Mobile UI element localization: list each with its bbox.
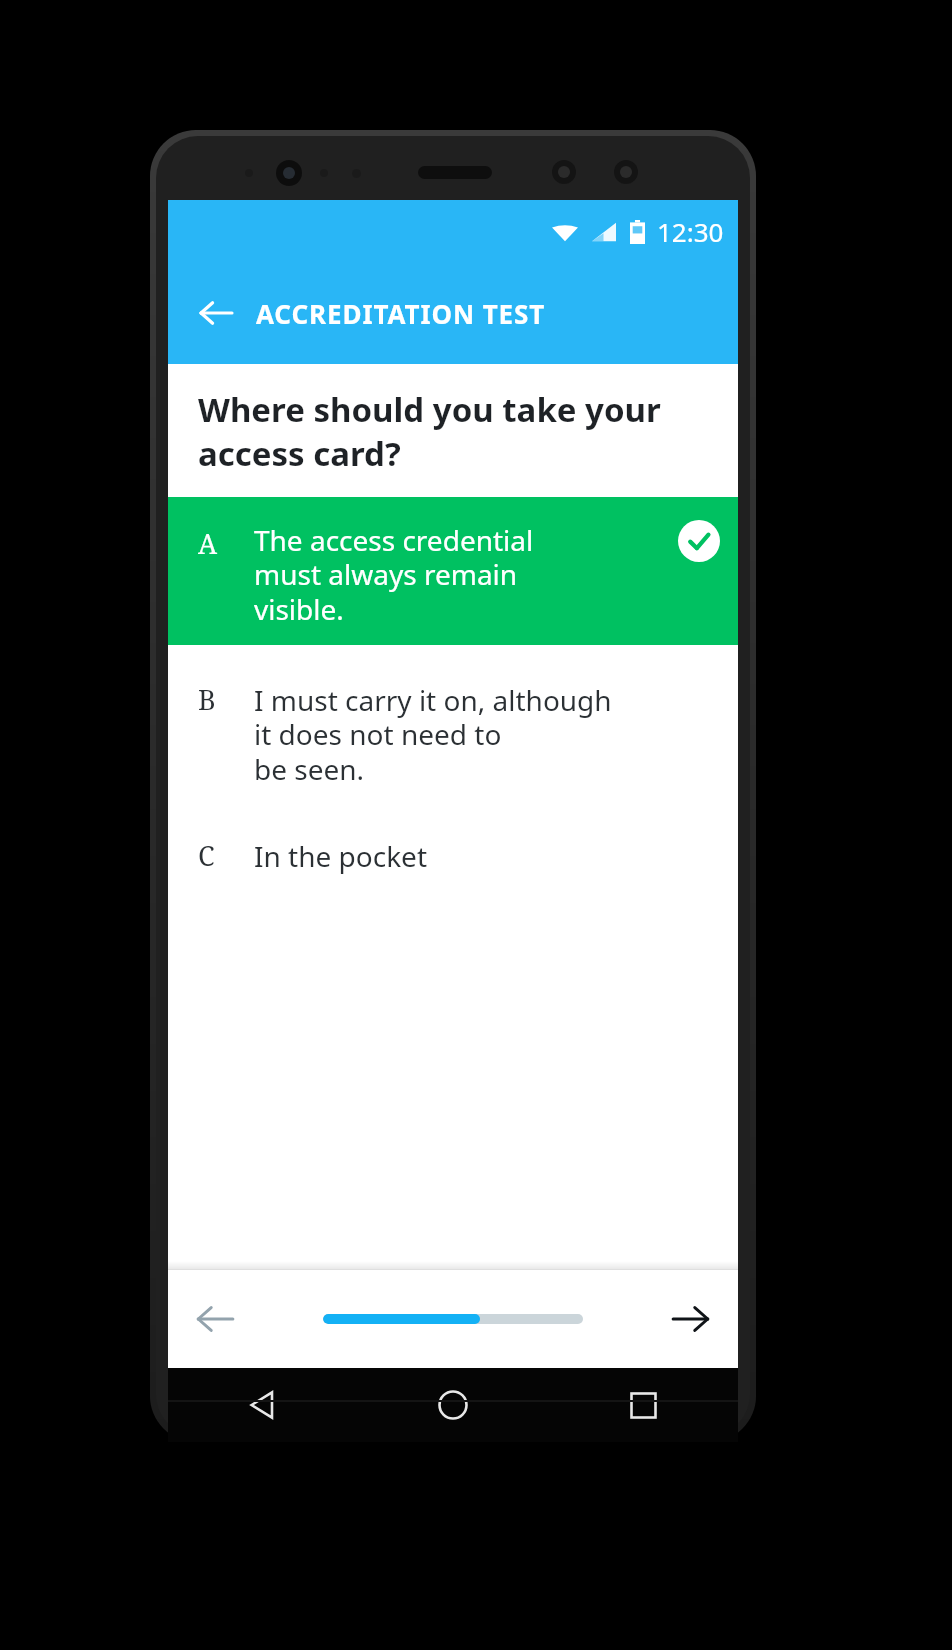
button[interactable]: Back bbox=[188, 285, 244, 341]
button[interactable]: C bbox=[168, 793, 738, 879]
button[interactable]: A bbox=[168, 497, 738, 645]
button[interactable]: Home bbox=[431, 1383, 475, 1427]
staticText: The access credential must always remain… bbox=[254, 521, 534, 629]
staticText: B bbox=[198, 681, 254, 718]
staticText: I must carry it on, although it does not… bbox=[254, 681, 612, 789]
button[interactable]: Next question bbox=[660, 1288, 722, 1350]
staticText: A bbox=[198, 525, 218, 562]
other: Selected bbox=[678, 520, 720, 562]
button[interactable]: B bbox=[168, 645, 738, 793]
staticText: Where should you take your access card? bbox=[198, 387, 661, 475]
button[interactable]: Previous question bbox=[184, 1288, 246, 1350]
staticText: In the pocket bbox=[254, 837, 428, 875]
staticText: ACCREDITATION TEST bbox=[256, 296, 546, 331]
button[interactable]: Back bbox=[241, 1383, 285, 1427]
button[interactable]: Recent apps bbox=[621, 1383, 665, 1427]
staticText: 12:30 bbox=[657, 214, 724, 249]
staticText: C bbox=[198, 837, 254, 874]
